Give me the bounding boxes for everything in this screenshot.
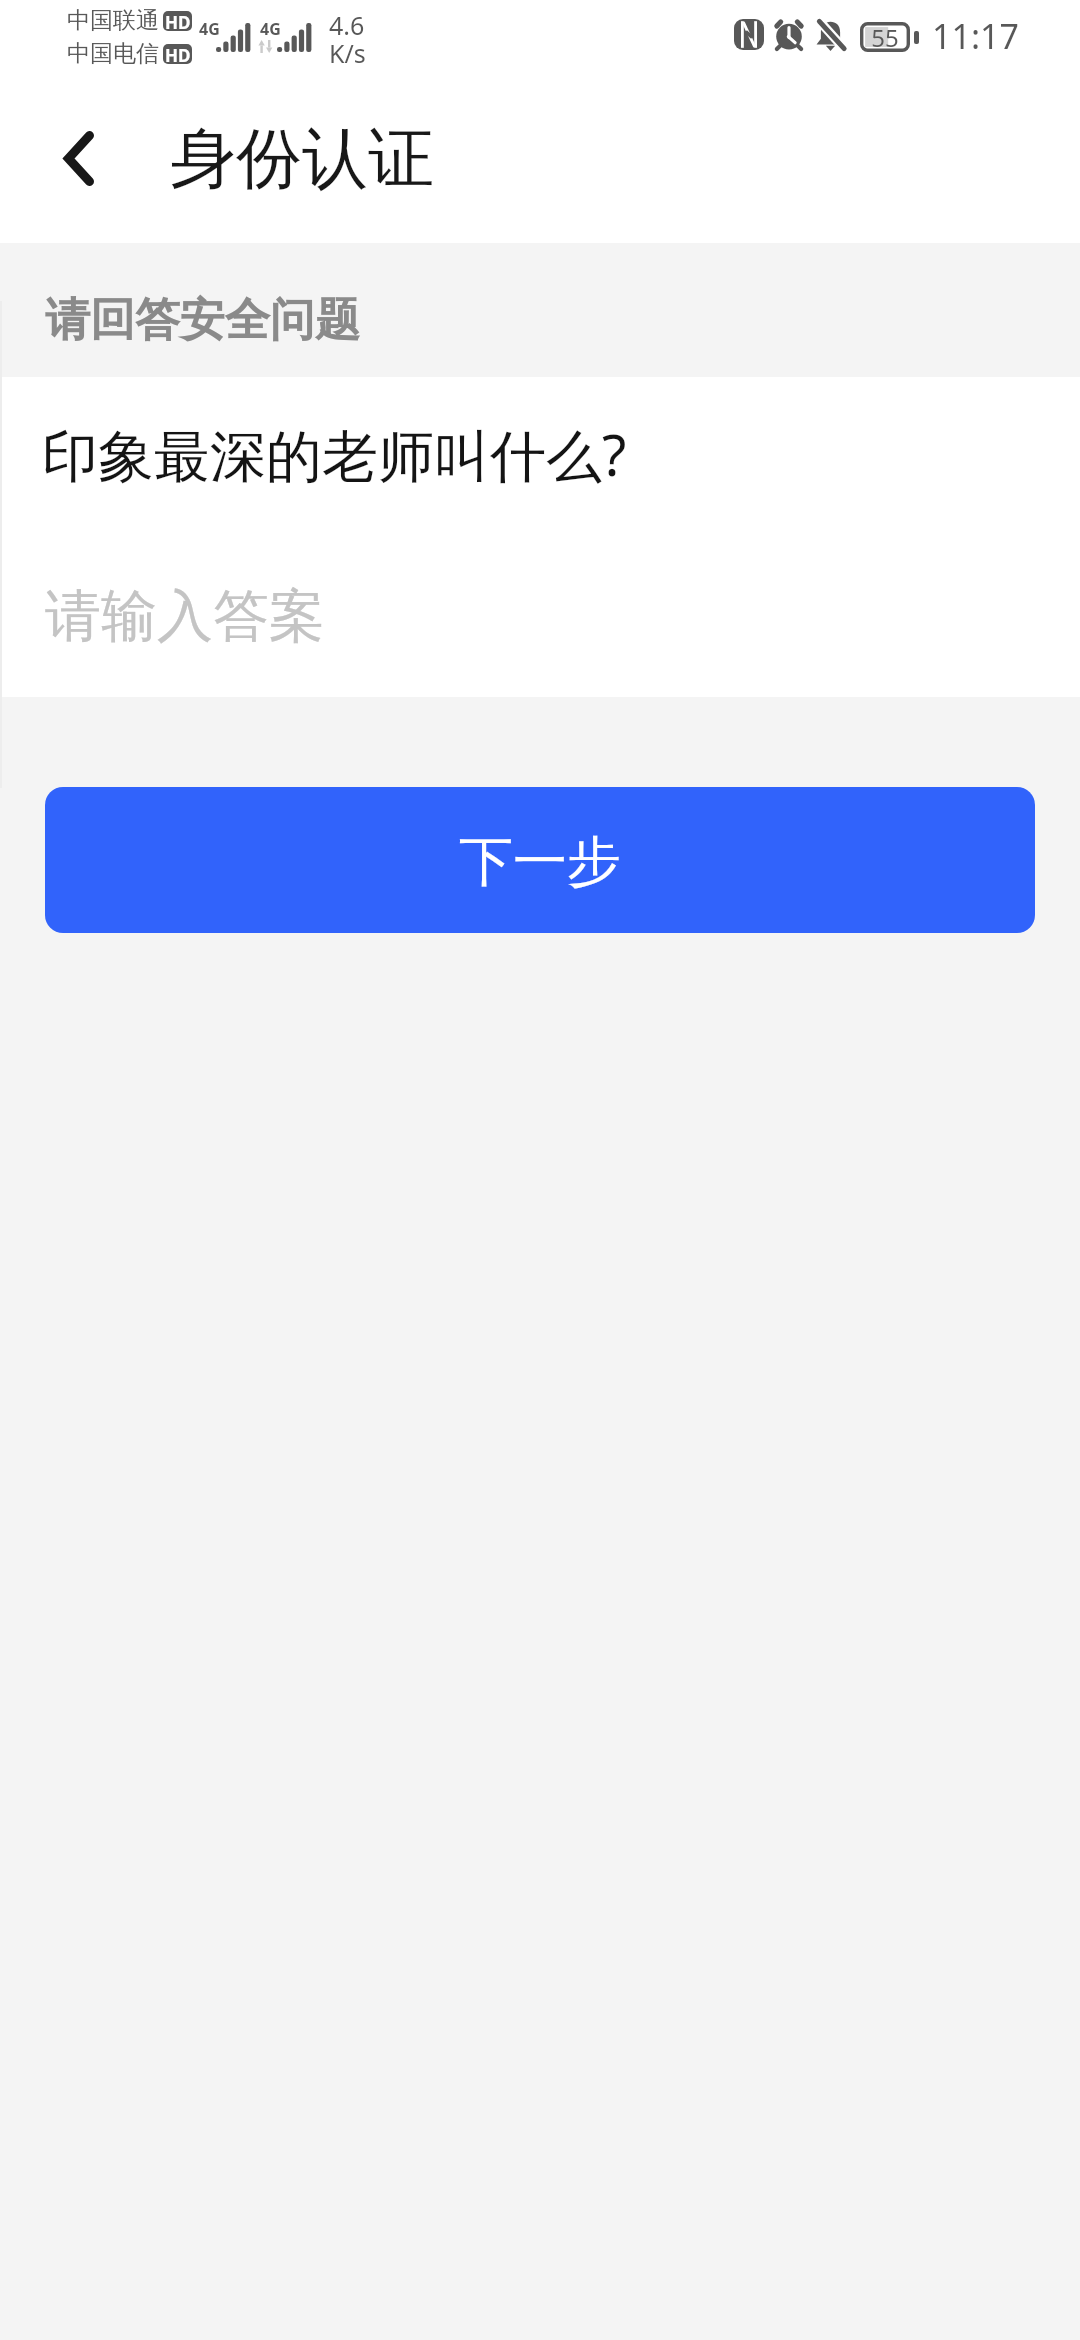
staticText: 4.6 — [329, 8, 365, 42]
button[interactable]: 请输入答案 — [0, 537, 1080, 697]
staticText: 身份认证 — [170, 117, 434, 200]
staticText: 中国电信 — [67, 39, 159, 68]
staticText: 请输入答案 — [45, 581, 325, 652]
button[interactable]: Back — [24, 103, 134, 213]
staticText: 4G — [199, 18, 220, 40]
staticText: 11:17 — [932, 13, 1019, 59]
staticText: 4G — [260, 18, 281, 40]
staticText: K/s — [329, 36, 366, 70]
staticText: HD — [165, 44, 191, 64]
staticText: 中国联通 — [67, 6, 159, 35]
staticText: 55 — [871, 21, 899, 51]
button[interactable]: 下一步 — [45, 787, 1035, 933]
staticText: 下一步 — [459, 828, 621, 896]
staticText: 印象最深的老师叫什么? — [42, 416, 627, 492]
staticText: 请回答安全问题 — [45, 292, 360, 349]
staticText: HD — [165, 11, 191, 31]
